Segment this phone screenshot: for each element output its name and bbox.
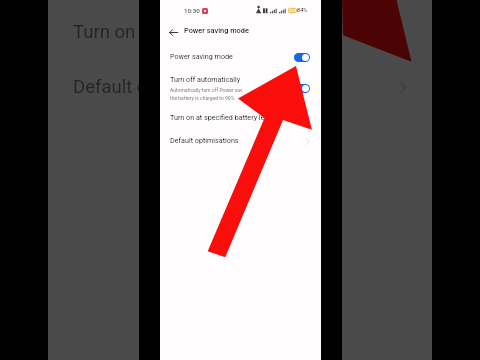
button[interactable]: Turn off automatically bbox=[170, 73, 300, 85]
button[interactable]: Toggle bbox=[294, 53, 310, 62]
staticText: the battery is charged to 90% bbox=[170, 95, 235, 101]
button[interactable]: Turn on at specified battery le bbox=[170, 111, 300, 123]
button[interactable]: Back bbox=[165, 24, 181, 40]
button[interactable]: Power saving mode bbox=[170, 50, 300, 62]
staticText: Default o bbox=[73, 76, 148, 98]
button[interactable]: Default optimisations bbox=[170, 134, 300, 146]
staticText: Turn off automatically bbox=[170, 75, 241, 83]
staticText: 84% bbox=[297, 7, 308, 14]
button[interactable]: Default optimisations bbox=[304, 137, 312, 146]
staticText: Power saving mode bbox=[184, 26, 249, 35]
button[interactable]: Toggle bbox=[294, 84, 310, 93]
staticText: Default optimisations bbox=[170, 136, 239, 144]
staticText: Power saving mode bbox=[170, 52, 233, 60]
staticText: Turn on a bbox=[73, 21, 150, 43]
staticText: Turn on at specified battery le bbox=[170, 113, 265, 121]
staticText: Automatically turn off Power sav bbox=[170, 87, 243, 93]
staticText: 10:30 bbox=[184, 7, 200, 14]
